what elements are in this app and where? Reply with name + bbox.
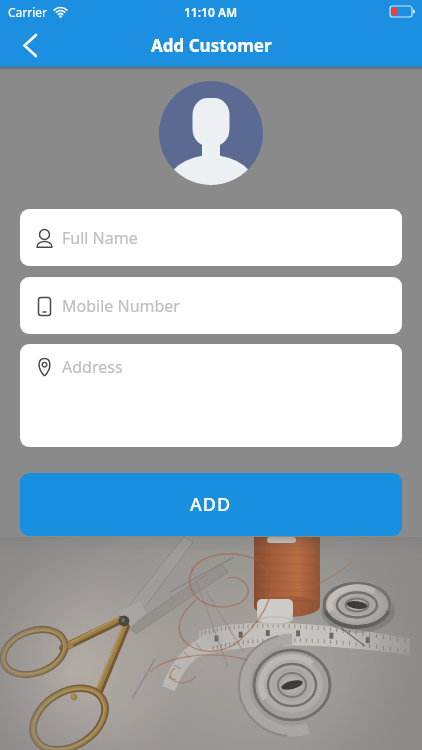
staticText: Address [62,356,123,378]
staticText: Add Customer [151,34,272,57]
staticText: Full Name [62,227,138,249]
button[interactable]: ADD [20,473,402,536]
staticText: 11:10 AM [184,4,238,20]
staticText: Carrier [8,4,48,20]
button[interactable] [14,29,46,61]
button[interactable]: Mobile Number [20,277,402,334]
staticText: Mobile Number [62,295,180,317]
staticText: ADD [190,492,232,517]
button[interactable]: Address [20,344,402,447]
button[interactable]: Full Name [20,209,402,266]
